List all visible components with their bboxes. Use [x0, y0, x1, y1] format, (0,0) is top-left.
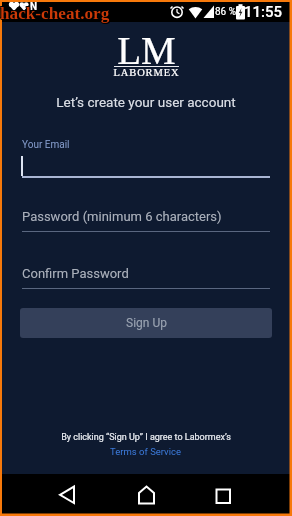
staticText: hack-cheat.org — [1, 5, 111, 24]
button[interactable]: Sign Up — [20, 308, 272, 338]
button[interactable]: Terms of Service — [110, 446, 182, 457]
staticText: Your Email — [22, 139, 70, 151]
staticText: N — [30, 1, 38, 13]
staticText: Confirm Password — [22, 266, 129, 281]
staticText: 11:55 — [244, 3, 283, 21]
staticText: Sign Up — [126, 316, 167, 330]
button[interactable] — [45, 478, 89, 512]
staticText: 86 % — [215, 6, 237, 18]
staticText: LM — [117, 29, 176, 72]
staticText: hack-cheat.org — [0, 3, 110, 22]
button[interactable] — [201, 478, 245, 512]
button[interactable] — [22, 152, 270, 178]
staticText: hack-cheat.org — [0, 5, 110, 24]
staticText: hack-cheat.org — [0, 3, 109, 22]
staticText: Terms of Service — [110, 446, 182, 457]
staticText: hack-cheat.org — [0, 4, 110, 23]
button[interactable] — [22, 207, 270, 233]
staticText: hack-cheat.org — [0, 4, 109, 23]
button[interactable] — [22, 264, 270, 290]
staticText: By clicking “Sign Up” I agree to Laborme… — [61, 432, 231, 443]
button[interactable] — [124, 478, 168, 512]
staticText: Let’s create your user account — [56, 94, 236, 110]
staticText: Password (minimum 6 characters) — [22, 209, 222, 224]
staticText: hack-cheat.org — [1, 4, 111, 23]
staticText: LABORMEX — [113, 67, 180, 79]
